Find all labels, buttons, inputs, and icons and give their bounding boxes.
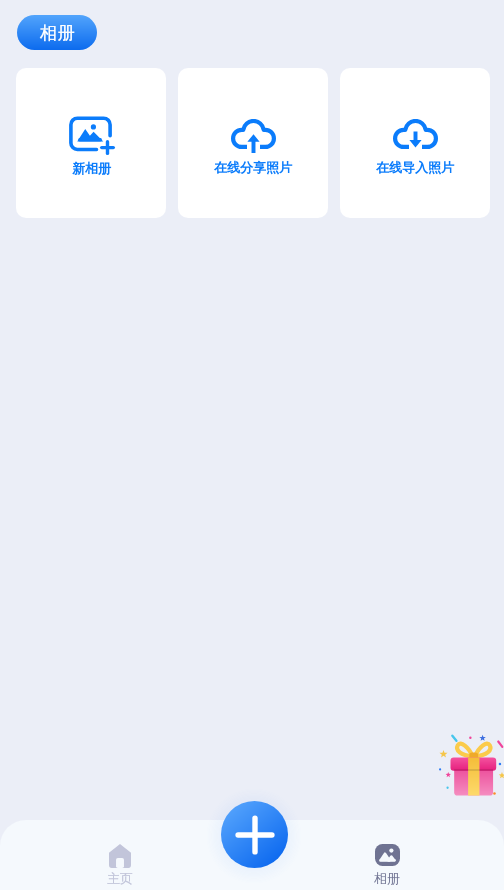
staticText: 相册 [374, 870, 400, 886]
staticText: 主页 [107, 870, 133, 886]
button[interactable]: 主页 [88, 820, 152, 890]
button[interactable]: 相册 [355, 820, 419, 890]
button[interactable]: 在线导入照片 [340, 68, 490, 218]
staticText: 在线分享照片 [214, 159, 292, 175]
button[interactable]: 新相册 [16, 68, 166, 218]
staticText: 在线导入照片 [376, 159, 454, 175]
button[interactable]: 相册 [17, 15, 97, 50]
staticText: 相册 [40, 22, 75, 44]
staticText: 新相册 [72, 160, 111, 176]
button[interactable]: 在线分享照片 [178, 68, 328, 218]
button[interactable]: Gift [435, 732, 503, 800]
button[interactable]: Add [221, 801, 288, 868]
